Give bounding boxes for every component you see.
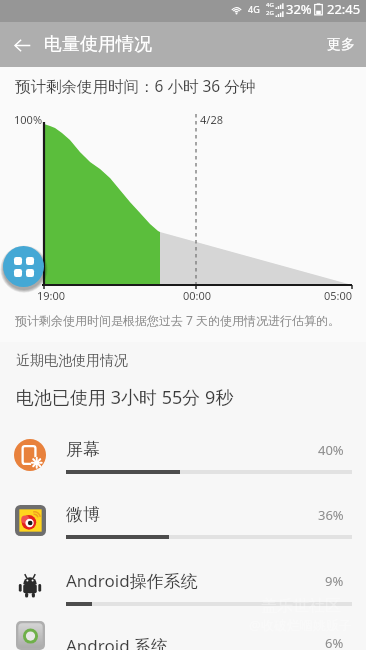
staticText: Android 系统	[66, 634, 169, 650]
button[interactable]: Android 系统	[0, 621, 366, 650]
button[interactable]: 更多	[316, 26, 366, 64]
staticText: 更多	[327, 36, 355, 54]
button[interactable]: Android操作系统	[0, 556, 366, 621]
staticText: 电量使用情况	[44, 33, 152, 56]
staticText: 预计剩余使用时间是根据您过去 7 天的使用情况进行估算的。	[15, 312, 341, 328]
staticText: 19:00	[37, 288, 66, 303]
button[interactable]: Apps	[3, 246, 44, 287]
staticText: 电池已使用 3小时 55分 9秒	[16, 385, 234, 410]
staticText: 100%	[14, 112, 43, 127]
staticText: 40%	[318, 441, 344, 459]
staticText: 32%	[286, 0, 312, 18]
button[interactable]: Back	[6, 29, 38, 61]
staticText: 36%	[318, 506, 344, 524]
staticText: 2G	[266, 9, 274, 17]
staticText: 22:45	[327, 0, 361, 18]
staticText: 4G	[248, 3, 260, 15]
staticText: 盖乐世社区	[261, 596, 341, 616]
button[interactable]: 屏幕	[0, 426, 366, 491]
staticText: 微博	[66, 504, 100, 525]
staticText: 4/28	[200, 112, 223, 127]
staticText: 屏幕	[66, 439, 100, 460]
staticText: 6%	[325, 634, 344, 650]
staticText: 00:00	[183, 288, 212, 303]
button[interactable]: 微博	[0, 491, 366, 556]
staticText: 预计剩余使用时间：6 小时 36 分钟	[15, 75, 256, 96]
staticText: 05:00	[324, 288, 353, 303]
staticText: 4G	[266, 1, 274, 9]
staticText: 近期电池使用情况	[16, 352, 128, 370]
staticText: Android操作系统	[66, 569, 198, 592]
staticText: 9%	[325, 572, 344, 590]
